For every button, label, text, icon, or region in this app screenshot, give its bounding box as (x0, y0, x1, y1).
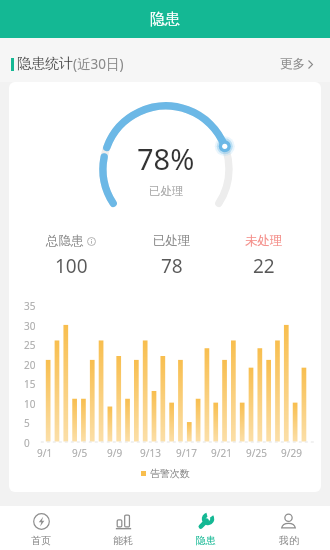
staticText: (近30日) (73, 55, 124, 73)
staticText: 我的 (279, 534, 299, 547)
staticText: 更多 (280, 56, 305, 72)
button[interactable]: Home (0, 506, 82, 550)
staticText: 9/29 (281, 446, 302, 460)
staticText: 告警次数 (150, 467, 190, 480)
staticText: 100 (55, 253, 88, 279)
staticText: 15 (24, 377, 36, 391)
staticText: 已处理 (149, 184, 184, 198)
button[interactable]: Energy (82, 506, 164, 550)
staticText: 9/13 (140, 446, 161, 460)
staticText: 未处理 (245, 233, 283, 249)
button[interactable]: Profile (247, 506, 330, 550)
staticText: 隐患 (150, 10, 180, 29)
staticText: 9/1 (37, 446, 53, 460)
staticText: 20 (24, 358, 36, 372)
staticText: 25 (24, 338, 36, 352)
button[interactable]: 更多 (278, 48, 315, 80)
staticText: 隐患 (196, 534, 216, 547)
staticText: 9/21 (211, 446, 232, 460)
button[interactable]: Hazards (164, 506, 247, 550)
staticText: 首页 (31, 534, 51, 547)
staticText: 总隐患 (46, 233, 84, 249)
staticText: 已处理 (153, 233, 191, 249)
staticText: 78 (161, 253, 183, 279)
staticText: 35 (24, 299, 36, 313)
staticText: 9/17 (176, 446, 197, 460)
staticText: 隐患统计 (17, 55, 73, 73)
staticText: 0 (24, 436, 30, 450)
staticText: 9/9 (107, 446, 123, 460)
staticText: 5 (24, 416, 30, 430)
staticText: 9/5 (72, 446, 88, 460)
staticText: 78% (137, 139, 195, 178)
staticText: 10 (24, 397, 36, 411)
staticText: 能耗 (113, 534, 133, 547)
staticText: 22 (253, 253, 275, 279)
staticText: 30 (24, 319, 36, 333)
staticText: 9/25 (246, 446, 267, 460)
